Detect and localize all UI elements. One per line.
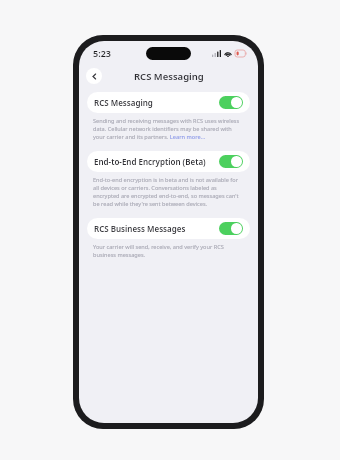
staticText: RCS Messaging [134, 70, 204, 83]
staticText: Sending and receiving messages with RCS … [93, 117, 244, 141]
staticText: RCS Messaging [94, 97, 219, 108]
button[interactable]: End-to-End Encryption (Beta) [87, 151, 250, 172]
button[interactable]: Back [86, 68, 102, 84]
staticText: Your carrier will send, receive, and ver… [93, 243, 244, 259]
staticText: End-to-end encryption is in beta and is … [93, 176, 244, 208]
button[interactable]: End-to-End Encryption (Beta) toggle [219, 155, 243, 168]
staticText: End-to-End Encryption (Beta) [94, 156, 219, 167]
staticText: 5:23 [93, 47, 111, 59]
button[interactable]: RCS Messaging toggle [219, 96, 243, 109]
button[interactable]: RCS Messaging [87, 92, 250, 113]
staticText: RCS Business Messages [94, 223, 219, 234]
button[interactable]: RCS Business Messages [87, 218, 250, 239]
button[interactable]: RCS Business Messages toggle [219, 222, 243, 235]
